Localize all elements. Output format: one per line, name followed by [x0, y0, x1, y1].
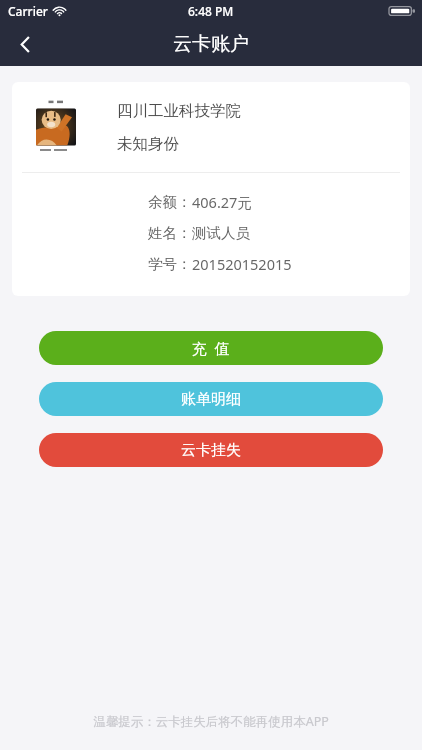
staticText: 充 值 [192, 338, 230, 358]
staticText: 6:48 PM [188, 3, 234, 19]
staticText: 余额： [148, 193, 192, 211]
button[interactable]: 账单明细 [39, 382, 383, 416]
staticText: 四川工业科技学院 [117, 101, 241, 121]
staticText: Carrier [8, 3, 48, 19]
button[interactable]: 充 值 [39, 331, 383, 365]
staticText: 未知身份 [117, 134, 179, 154]
staticText: 账单明细 [181, 390, 241, 409]
staticText: 云卡挂失 [181, 441, 241, 460]
staticText: 温馨提示：云卡挂失后将不能再使用本APP [0, 713, 422, 730]
staticText: 姓名： [148, 224, 192, 242]
staticText: 201520152015 [192, 254, 292, 274]
staticText: 测试人员 [192, 224, 250, 242]
staticText: 406.27元 [192, 192, 252, 212]
staticText: 云卡账户 [173, 32, 249, 56]
button[interactable]: 返回 [0, 22, 50, 66]
button[interactable]: 云卡挂失 [39, 433, 383, 467]
staticText: 学号： [148, 255, 192, 273]
